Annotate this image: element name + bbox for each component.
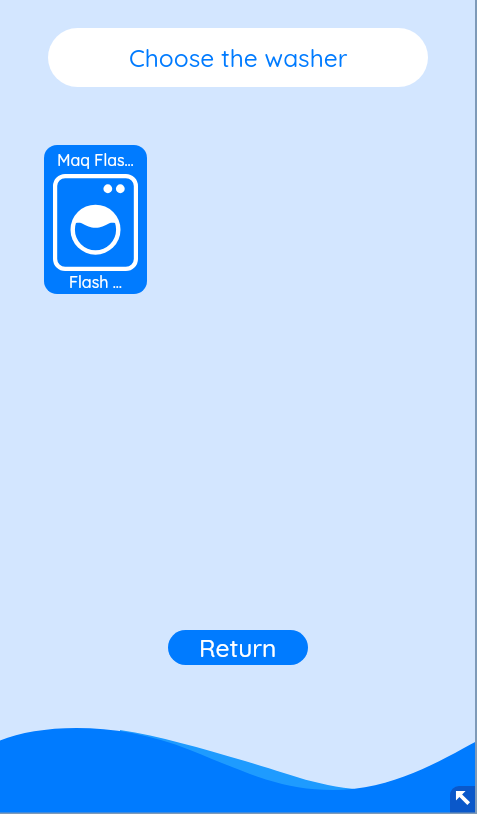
button[interactable]: Back (450, 786, 477, 814)
staticText: Return (199, 632, 277, 663)
staticText: Flash … (44, 272, 147, 292)
button[interactable]: Return (168, 630, 308, 665)
staticText: Choose the washer (129, 42, 348, 73)
button[interactable]: Choose the washer (48, 28, 428, 87)
button[interactable]: Maq Flas… (44, 145, 147, 294)
staticText: Maq Flas… (44, 150, 147, 170)
